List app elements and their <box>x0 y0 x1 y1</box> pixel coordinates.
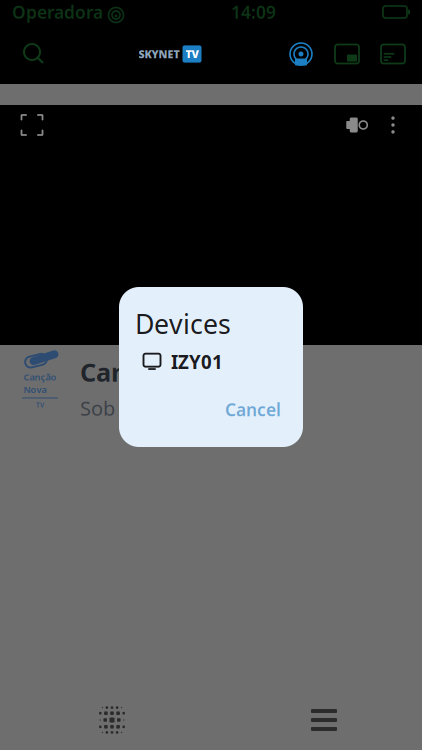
button[interactable]: Live broadcast <box>284 34 318 74</box>
button[interactable]: Picture in picture <box>330 34 364 74</box>
button[interactable]: Cast to device <box>376 34 410 74</box>
staticText: Devices <box>135 306 231 341</box>
staticText: TV <box>36 400 44 409</box>
staticText: SKYNET <box>138 47 179 61</box>
button[interactable]: Channel grid <box>88 696 136 744</box>
button[interactable]: Menu <box>300 698 348 742</box>
staticText: TV <box>185 47 198 61</box>
staticText: Canção Nova <box>23 371 56 395</box>
staticText: Operadora <box>12 0 103 23</box>
button[interactable]: Cancel <box>215 392 291 427</box>
button[interactable]: IZY01 <box>119 341 303 382</box>
staticText: Canção Nova TV <box>80 355 281 389</box>
staticText: IZY01 <box>171 349 223 374</box>
button[interactable]: Volume <box>336 105 376 145</box>
button[interactable]: More options <box>376 105 410 145</box>
button[interactable]: Search <box>12 32 56 76</box>
staticText: 14:09 <box>231 0 276 23</box>
staticText: Sob O Manto de Maria <box>80 395 287 421</box>
button[interactable]: Full screen <box>12 105 52 145</box>
staticText: Cancel <box>225 398 281 421</box>
